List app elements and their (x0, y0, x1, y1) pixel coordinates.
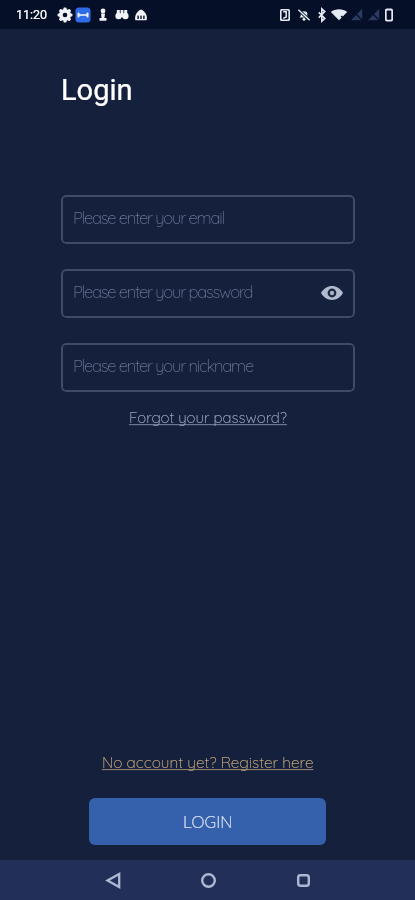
staticText: 11:20 (16, 7, 48, 22)
button[interactable]: LOGIN (89, 798, 326, 845)
button[interactable]: Back (90, 860, 136, 900)
staticText: Please enter your password (73, 281, 253, 302)
button[interactable]: Please enter your nickname (61, 343, 355, 392)
staticText: LOGIN (183, 811, 233, 832)
staticText: Login (61, 73, 133, 107)
button[interactable]: Home (185, 860, 231, 900)
button[interactable]: Please enter your password (61, 269, 355, 318)
button[interactable]: Recents (280, 860, 326, 900)
button[interactable]: No account yet? Register here (96, 750, 320, 775)
button[interactable]: Please enter your email (61, 195, 355, 244)
staticText: Please enter your nickname (73, 355, 253, 376)
staticText: Please enter your email (73, 207, 224, 228)
button[interactable]: Forgot your password? (123, 405, 293, 430)
button[interactable]: Toggle password visibility (319, 280, 345, 306)
